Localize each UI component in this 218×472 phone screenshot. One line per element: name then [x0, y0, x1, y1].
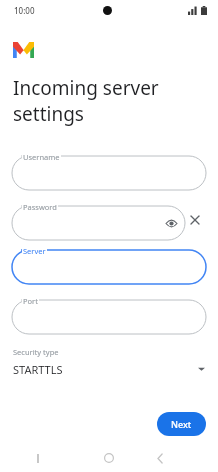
button[interactable]: Username	[12, 156, 206, 190]
staticText: Incoming server settings	[13, 75, 213, 126]
button[interactable]: Port	[12, 300, 206, 334]
button[interactable]: Home	[89, 444, 129, 472]
button[interactable]: Clear password	[187, 212, 203, 228]
staticText: STARTTLS	[13, 362, 63, 377]
staticText: Server	[23, 246, 46, 256]
button[interactable]: Server	[12, 250, 206, 284]
staticText: Port	[23, 296, 38, 306]
button[interactable]: Show password	[163, 215, 179, 231]
staticText: Username	[23, 152, 60, 162]
staticText: 10:00	[14, 5, 35, 16]
button[interactable]: Back	[140, 444, 180, 472]
staticText: Security type	[13, 347, 59, 357]
staticText: Password	[23, 202, 57, 212]
button[interactable]: Password	[12, 206, 185, 240]
button[interactable]: Next	[157, 412, 206, 436]
button[interactable]: STARTTLS	[12, 358, 206, 380]
staticText: Next	[171, 418, 192, 430]
